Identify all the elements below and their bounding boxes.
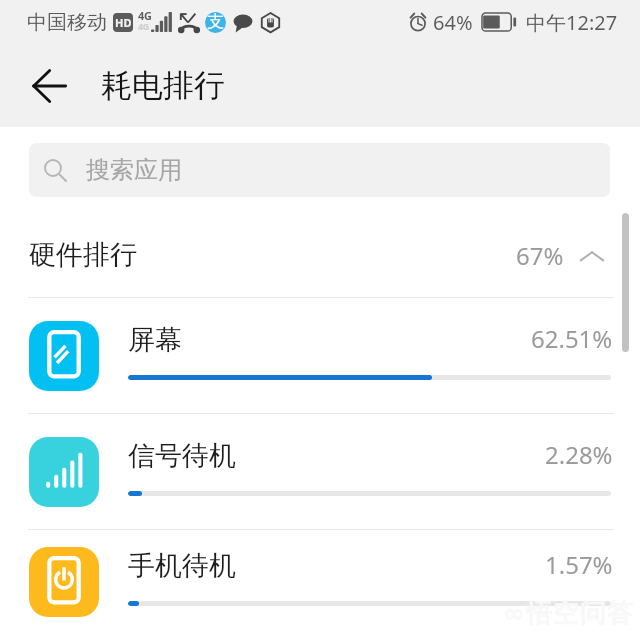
staticText: 屏幕 [128,323,182,357]
staticText: 62.51% [531,322,613,355]
button[interactable]: 搜索应用 [29,143,610,197]
button[interactable]: 手机待机 [0,530,640,633]
staticText: 耗电排行 [101,66,225,105]
staticText: 硬件排行 [29,238,137,272]
staticText: 中午12:27 [526,9,618,36]
staticText: 中国移动 [27,10,107,35]
button[interactable]: 硬件排行 [0,197,640,297]
staticText: 64% [433,9,473,36]
staticText: 2.28% [545,438,613,471]
staticText: HD [115,15,132,30]
staticText: 4G [138,20,150,32]
button[interactable]: 信号待机 [0,414,640,529]
staticText: 手机待机 [128,549,236,583]
staticText: ∞悟空问答 [503,597,634,630]
staticText: 信号待机 [128,439,236,473]
staticText: 1.57% [545,548,613,581]
staticText: 4G [138,8,151,23]
button[interactable]: Collapse 硬件排行 [578,243,606,271]
staticText: 支 [207,12,224,32]
staticText: 67% [516,239,564,272]
staticText: 搜索应用 [86,155,182,185]
button[interactable]: Back [17,54,81,118]
button[interactable]: 屏幕 [0,298,640,413]
